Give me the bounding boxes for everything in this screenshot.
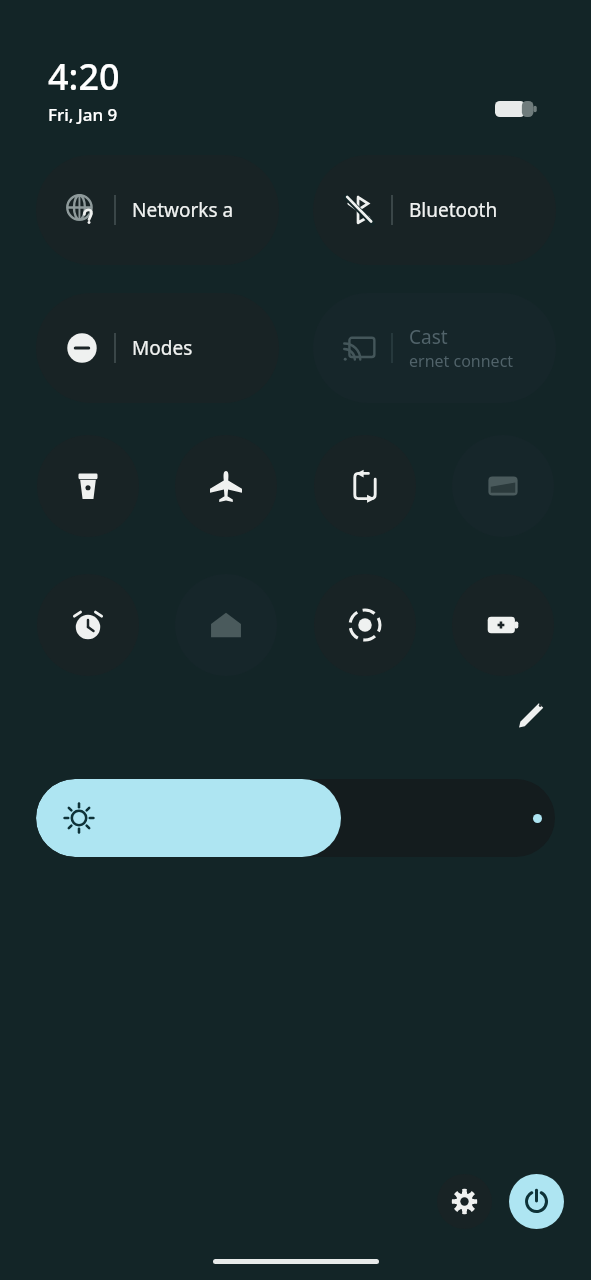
button[interactable]: Flashlight — [37, 435, 139, 537]
button[interactable]: Battery saver — [452, 574, 554, 676]
staticText: ernet connect — [409, 350, 514, 372]
staticText: Cast — [409, 324, 448, 350]
button[interactable]: Power — [509, 1174, 564, 1229]
button[interactable]: Alarm — [37, 574, 139, 676]
staticText: Bluetooth — [409, 197, 498, 223]
button[interactable]: Networks a — [36, 155, 279, 265]
button[interactable]: Screen record — [314, 574, 416, 676]
button[interactable]: Battery — [495, 96, 543, 122]
button[interactable]: Brightness — [36, 779, 555, 857]
button[interactable]: Airplane mode — [175, 435, 277, 537]
button[interactable]: Bluetooth — [313, 155, 556, 265]
button[interactable]: Home — [175, 574, 277, 676]
button[interactable]: Modes — [36, 293, 279, 403]
button[interactable]: Auto-rotate — [314, 435, 416, 537]
staticText: Networks a — [132, 197, 234, 223]
button[interactable]: Settings — [437, 1174, 492, 1229]
button[interactable]: Edit tiles — [508, 692, 554, 738]
staticText: 4:20 — [48, 52, 120, 101]
staticText: Modes — [132, 335, 193, 361]
button[interactable]: Cast — [313, 293, 556, 403]
button[interactable]: Wallet — [452, 435, 554, 537]
staticText: Fri, Jan 9 — [48, 103, 118, 126]
